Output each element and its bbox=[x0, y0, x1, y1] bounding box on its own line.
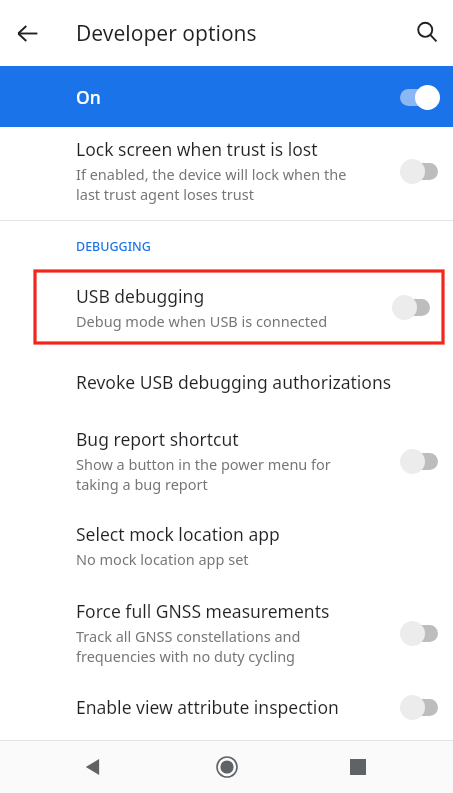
staticText: Show a button in the power menu for bbox=[76, 454, 331, 474]
button[interactable]: Force full GNSS measurements bbox=[0, 599, 453, 666]
button[interactable]: Back bbox=[5, 11, 49, 55]
staticText: Force full GNSS measurements bbox=[76, 599, 330, 623]
staticText: If enabled, the device will lock when th… bbox=[76, 164, 347, 184]
staticText: Select mock location app bbox=[76, 522, 280, 546]
staticText: taking a bug report bbox=[76, 474, 208, 494]
button[interactable]: On bbox=[0, 66, 453, 127]
staticText: Developer options bbox=[76, 19, 257, 48]
button[interactable]: Lock screen when trust is lost bbox=[0, 137, 453, 204]
staticText: Revoke USB debugging authorizations bbox=[76, 370, 392, 394]
staticText: Track all GNSS constellations and bbox=[76, 626, 301, 646]
staticText: last trust agent loses trust bbox=[76, 184, 254, 204]
button[interactable]: Back bbox=[68, 742, 118, 792]
staticText: USB debugging bbox=[76, 284, 205, 308]
button[interactable]: USB debugging bbox=[35, 271, 443, 343]
staticText: Lock screen when trust is lost bbox=[76, 137, 318, 161]
button[interactable]: Bug report shortcut bbox=[0, 427, 453, 494]
button[interactable]: Select mock location app bbox=[0, 522, 453, 569]
staticText: Bug report shortcut bbox=[76, 427, 239, 451]
button[interactable]: Home bbox=[202, 742, 252, 792]
staticText: No mock location app set bbox=[76, 549, 249, 569]
button[interactable]: Recent apps bbox=[333, 742, 383, 792]
button[interactable]: Enable view attribute inspection bbox=[0, 694, 453, 720]
button[interactable]: Revoke USB debugging authorizations bbox=[0, 369, 453, 395]
staticText: Debug mode when USB is connected bbox=[76, 311, 328, 331]
staticText: frequencies with no duty cycling bbox=[76, 646, 296, 666]
staticText: DEBUGGING bbox=[76, 238, 151, 255]
button[interactable]: Search bbox=[404, 9, 450, 55]
staticText: On bbox=[76, 85, 101, 109]
staticText: Enable view attribute inspection bbox=[76, 695, 339, 719]
